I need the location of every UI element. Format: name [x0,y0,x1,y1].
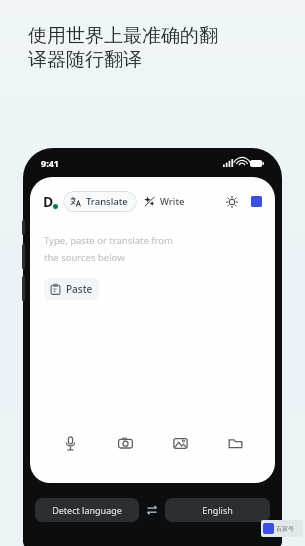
button[interactable]: Documents [222,430,248,456]
button[interactable]: Translate [63,191,137,212]
staticText: 译器随行翻译 [28,48,142,72]
staticText: 百家号 [276,525,294,533]
staticText: Write [160,195,185,208]
button[interactable]: DeepL [43,192,54,211]
button[interactable]: Voice input [57,430,83,456]
button[interactable]: Paste [44,278,99,300]
staticText: 使用世界上最准确的翻 [28,24,218,48]
staticText: D [43,192,54,211]
button[interactable]: Camera [112,430,138,456]
button[interactable]: Swap languages [139,498,165,522]
button[interactable]: Write [144,191,185,212]
staticText: Type, paste or translate from [44,234,173,247]
staticText: English [202,504,233,516]
staticText: 9:41 [41,157,59,169]
staticText: Paste [66,282,93,296]
staticText: Translate [86,195,128,208]
button[interactable]: Image [167,430,193,456]
staticText: the sources below [44,251,125,264]
button[interactable]: Detect language [35,498,139,522]
button[interactable]: English [165,498,270,522]
button[interactable]: Account [251,196,262,207]
button[interactable]: Theme [224,194,240,210]
staticText: Detect language [52,504,122,516]
